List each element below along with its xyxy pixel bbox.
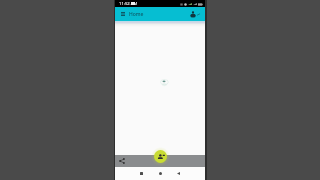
button[interactable]: Recents — [137, 169, 146, 178]
button[interactable]: Share — [119, 158, 125, 164]
button[interactable]: Account — [189, 10, 197, 18]
button[interactable]: Menu — [121, 12, 125, 16]
staticText: 11:52 AM — [119, 1, 138, 7]
button[interactable]: Add person — [154, 150, 167, 163]
button[interactable]: Back — [174, 169, 183, 178]
button[interactable]: Home — [156, 169, 165, 178]
staticText: Home — [129, 11, 144, 18]
